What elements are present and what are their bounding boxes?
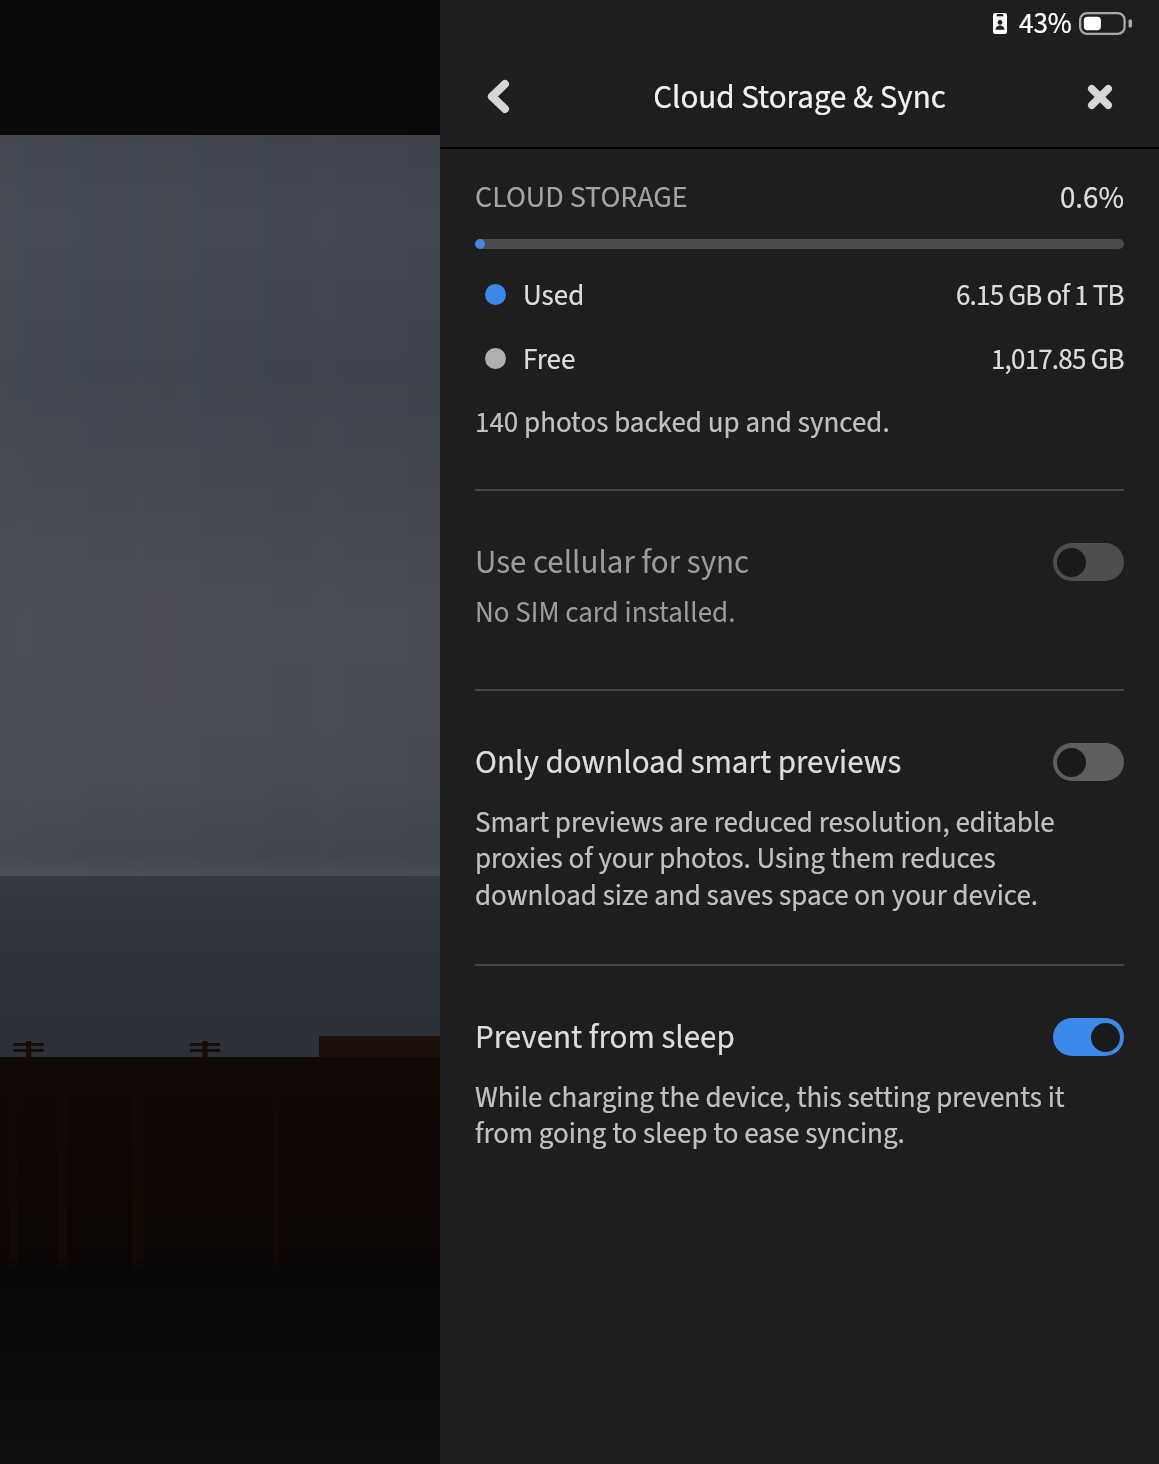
staticText: Prevent from sleep	[475, 1014, 735, 1061]
staticText: Use cellular for sync	[475, 539, 750, 586]
button[interactable]: Off	[1053, 743, 1124, 781]
staticText: Cloud Storage & Sync	[440, 74, 1159, 121]
button[interactable]: Prevent from sleep	[475, 964, 1124, 1184]
staticText: Free	[523, 339, 576, 380]
button[interactable]: Only download smart previews	[475, 689, 1124, 964]
staticText: 6.15 GB of 1 TB	[956, 275, 1124, 316]
button[interactable]: Back	[463, 61, 533, 131]
staticText: While charging the device, this setting …	[475, 1077, 1115, 1155]
button[interactable]: Off	[1053, 543, 1124, 581]
button[interactable]: Use cellular for sync	[475, 489, 1124, 689]
staticText: No SIM card installed.	[475, 592, 1115, 633]
staticText: Used	[523, 275, 585, 316]
staticText: Only download smart previews	[475, 739, 902, 786]
staticText: Smart previews are reduced resolution, e…	[475, 802, 1115, 917]
button[interactable]: On	[1053, 1018, 1124, 1056]
staticText: 0.6%	[475, 176, 1124, 220]
staticText: 140 photos backed up and synced.	[475, 402, 890, 443]
staticText: 43%	[1019, 3, 1072, 44]
staticText: CLOUD STORAGE	[475, 176, 688, 219]
staticText: 1,017.85 GB	[991, 339, 1124, 380]
button[interactable]: Close	[1065, 62, 1135, 132]
